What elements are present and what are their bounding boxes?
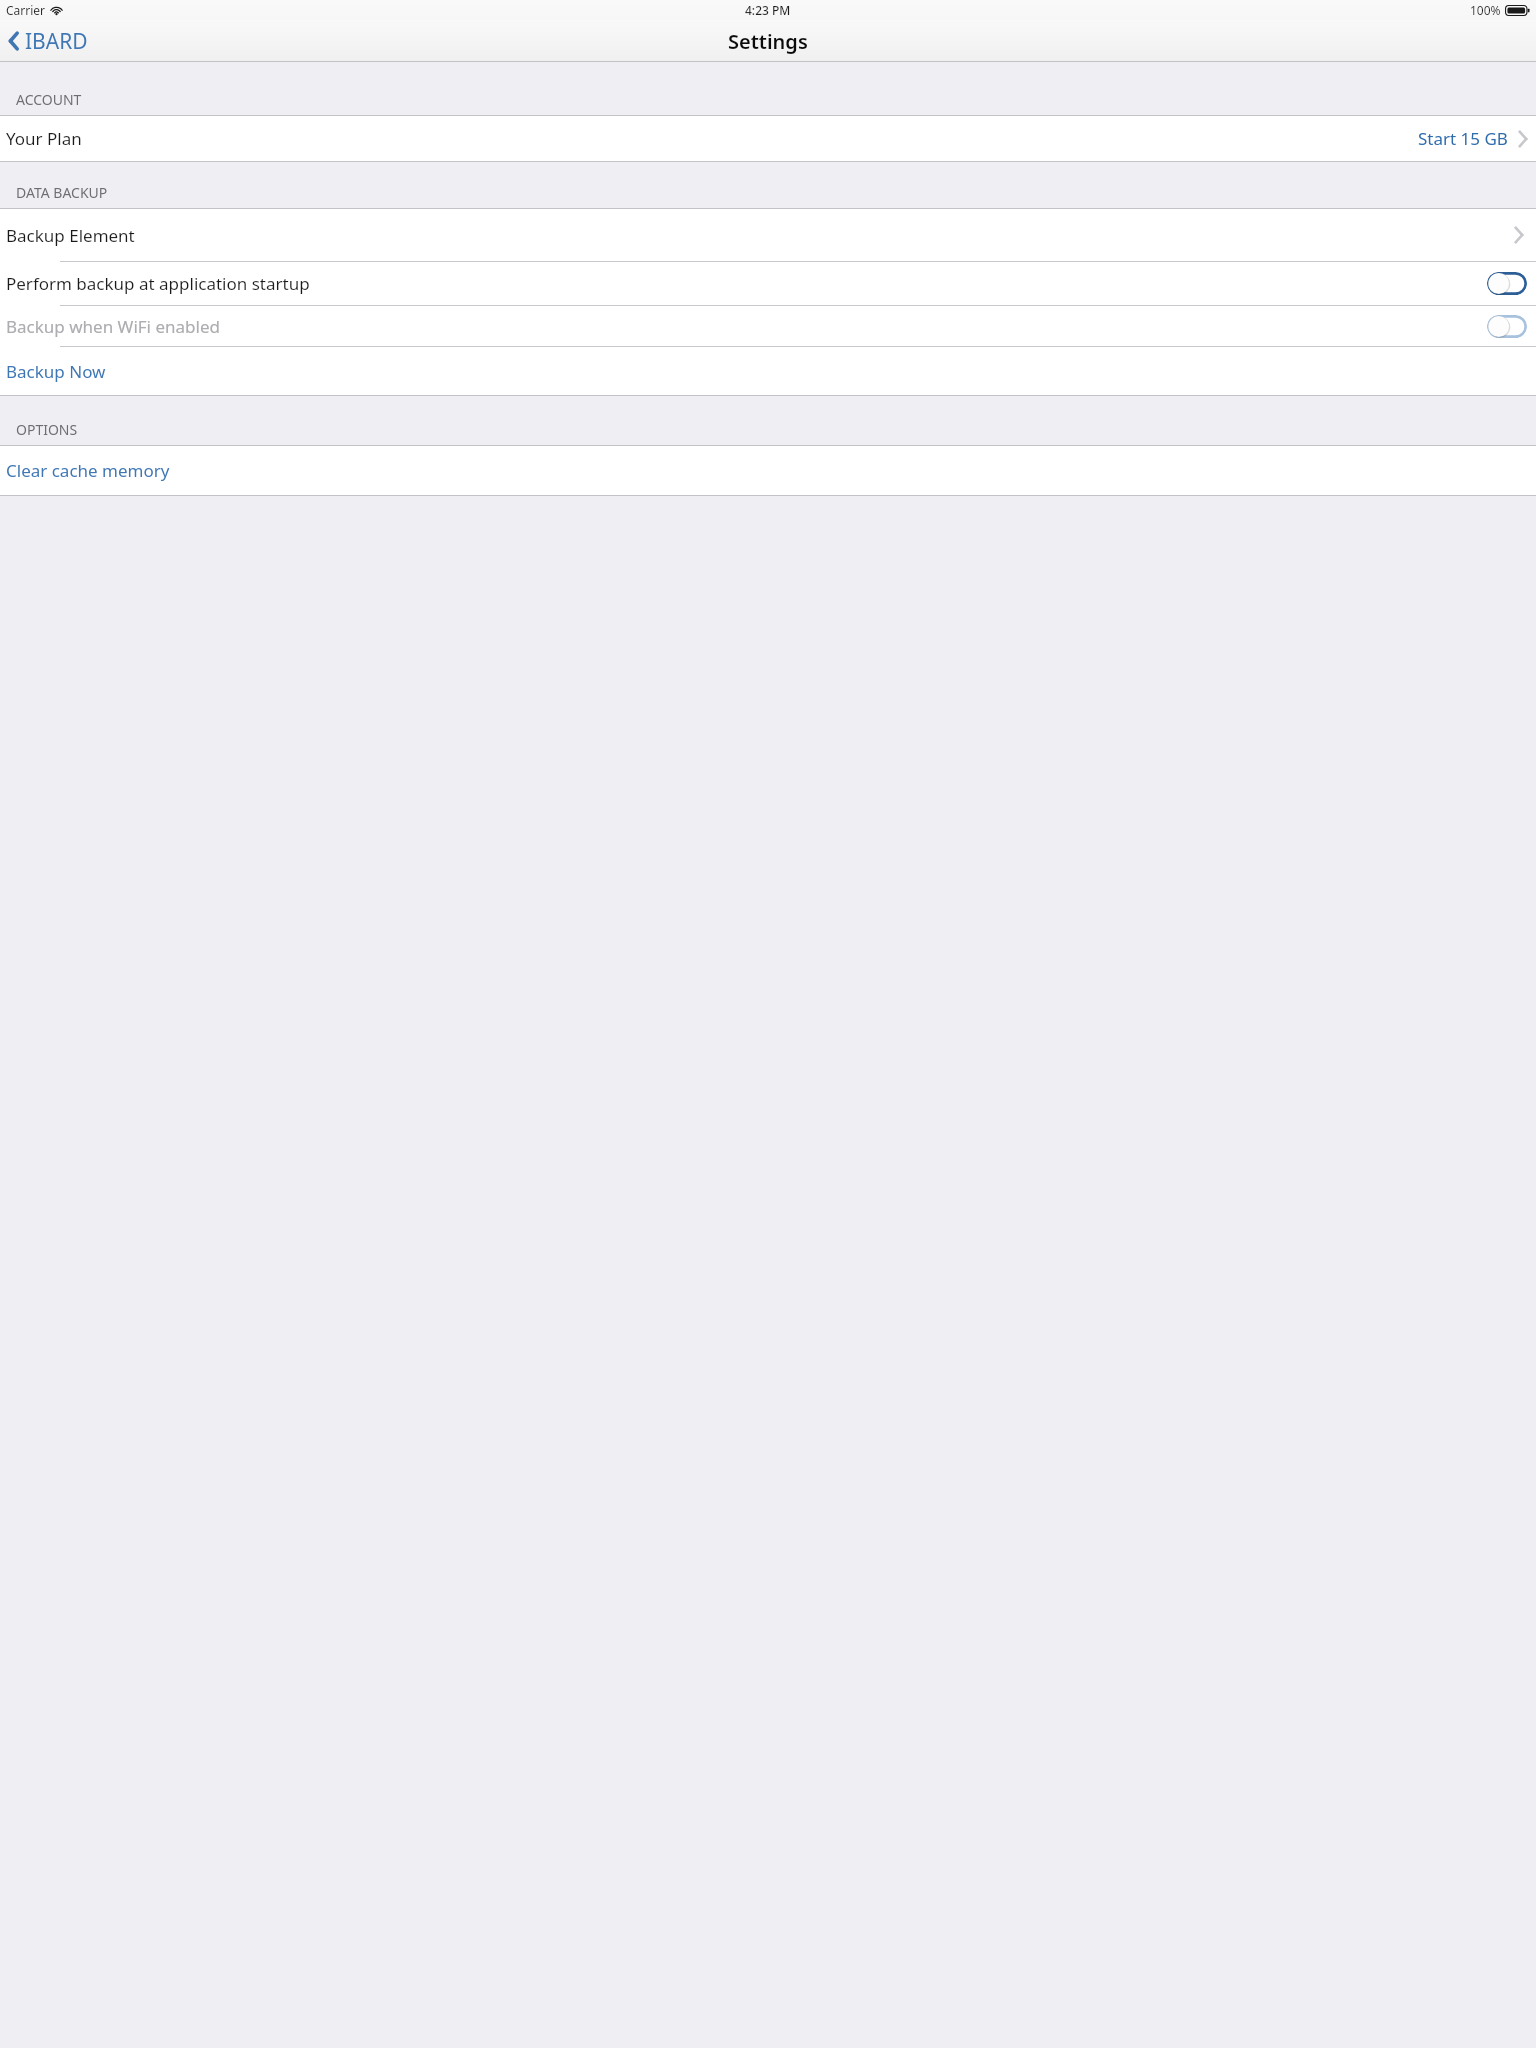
button[interactable]: Backup Element	[0, 209, 1536, 261]
button[interactable]: Toggle	[1487, 272, 1527, 295]
button[interactable]: Your Plan	[0, 116, 1536, 161]
staticText: Backup Now	[6, 360, 106, 383]
staticText: Settings	[728, 28, 808, 55]
staticText: OPTIONS	[16, 420, 78, 439]
button[interactable]: Perform backup at application startup	[0, 262, 1536, 305]
other: Back	[8, 31, 19, 51]
staticText: Backup when WiFi enabled	[6, 315, 220, 338]
staticText: 100%	[1470, 2, 1501, 18]
button[interactable]: Backup Now	[0, 347, 1536, 395]
staticText: Carrier	[6, 2, 46, 18]
staticText: Clear cache memory	[6, 459, 170, 482]
button[interactable]: Clear cache memory	[0, 446, 1536, 495]
staticText: ACCOUNT	[16, 90, 82, 109]
staticText: 4:23 PM	[745, 2, 791, 18]
button[interactable]: Back	[0, 20, 98, 62]
staticText: Your Plan	[6, 127, 82, 150]
staticText: Backup Element	[6, 224, 135, 247]
staticText: IBARD	[25, 27, 88, 56]
staticText: DATA BACKUP	[16, 183, 108, 202]
button[interactable]: Backup when WiFi enabled	[0, 306, 1536, 346]
staticText: Perform backup at application startup	[6, 272, 310, 295]
staticText: Start 15 GB	[1418, 127, 1508, 150]
button[interactable]: Toggle	[1487, 315, 1527, 338]
